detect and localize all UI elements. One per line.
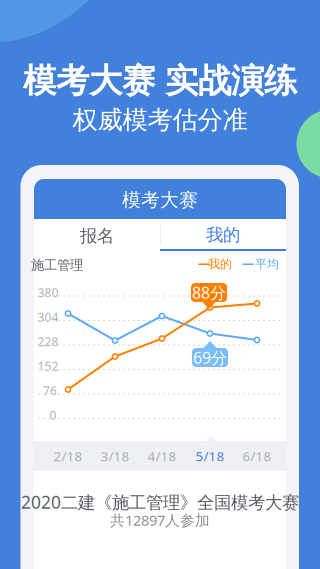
staticText: 共12897人参加 xyxy=(110,510,210,530)
staticText: 模考大赛 xyxy=(122,188,198,211)
staticText: 2020二建《施工管理》全国模考大赛 xyxy=(21,490,299,513)
staticText: 380 xyxy=(37,284,58,300)
staticText: 228 xyxy=(37,333,58,349)
button[interactable]: 4/18 xyxy=(0,0,320,569)
button[interactable]: 我的 xyxy=(0,0,320,569)
staticText: 6/18 xyxy=(242,447,271,465)
staticText: 76 xyxy=(43,382,57,398)
staticText: 304 xyxy=(37,309,58,325)
staticText: 0 xyxy=(49,407,56,423)
button[interactable]: 3/18 xyxy=(0,0,320,569)
staticText: 平均 xyxy=(255,257,279,271)
staticText: 我的 xyxy=(206,224,240,246)
staticText: 5/18 xyxy=(195,447,224,465)
staticText: 报名 xyxy=(80,225,114,247)
staticText: 4/18 xyxy=(147,447,176,465)
button[interactable]: 6/18 xyxy=(0,0,320,569)
staticText: 施工管理 xyxy=(31,257,83,273)
staticText: 3/18 xyxy=(100,447,129,465)
staticText: 88分 xyxy=(192,282,226,303)
staticText: 69分 xyxy=(193,347,227,368)
staticText: 权威模考估分准 xyxy=(72,104,247,135)
button[interactable]: 报名 xyxy=(0,0,320,569)
staticText: 152 xyxy=(37,358,58,374)
button[interactable]: 5/18 xyxy=(0,0,320,569)
staticText: 模考大赛 实战演练 xyxy=(23,60,297,102)
staticText: 2/18 xyxy=(53,447,82,465)
staticText: 我的 xyxy=(208,257,232,271)
button[interactable]: 2/18 xyxy=(0,0,320,569)
